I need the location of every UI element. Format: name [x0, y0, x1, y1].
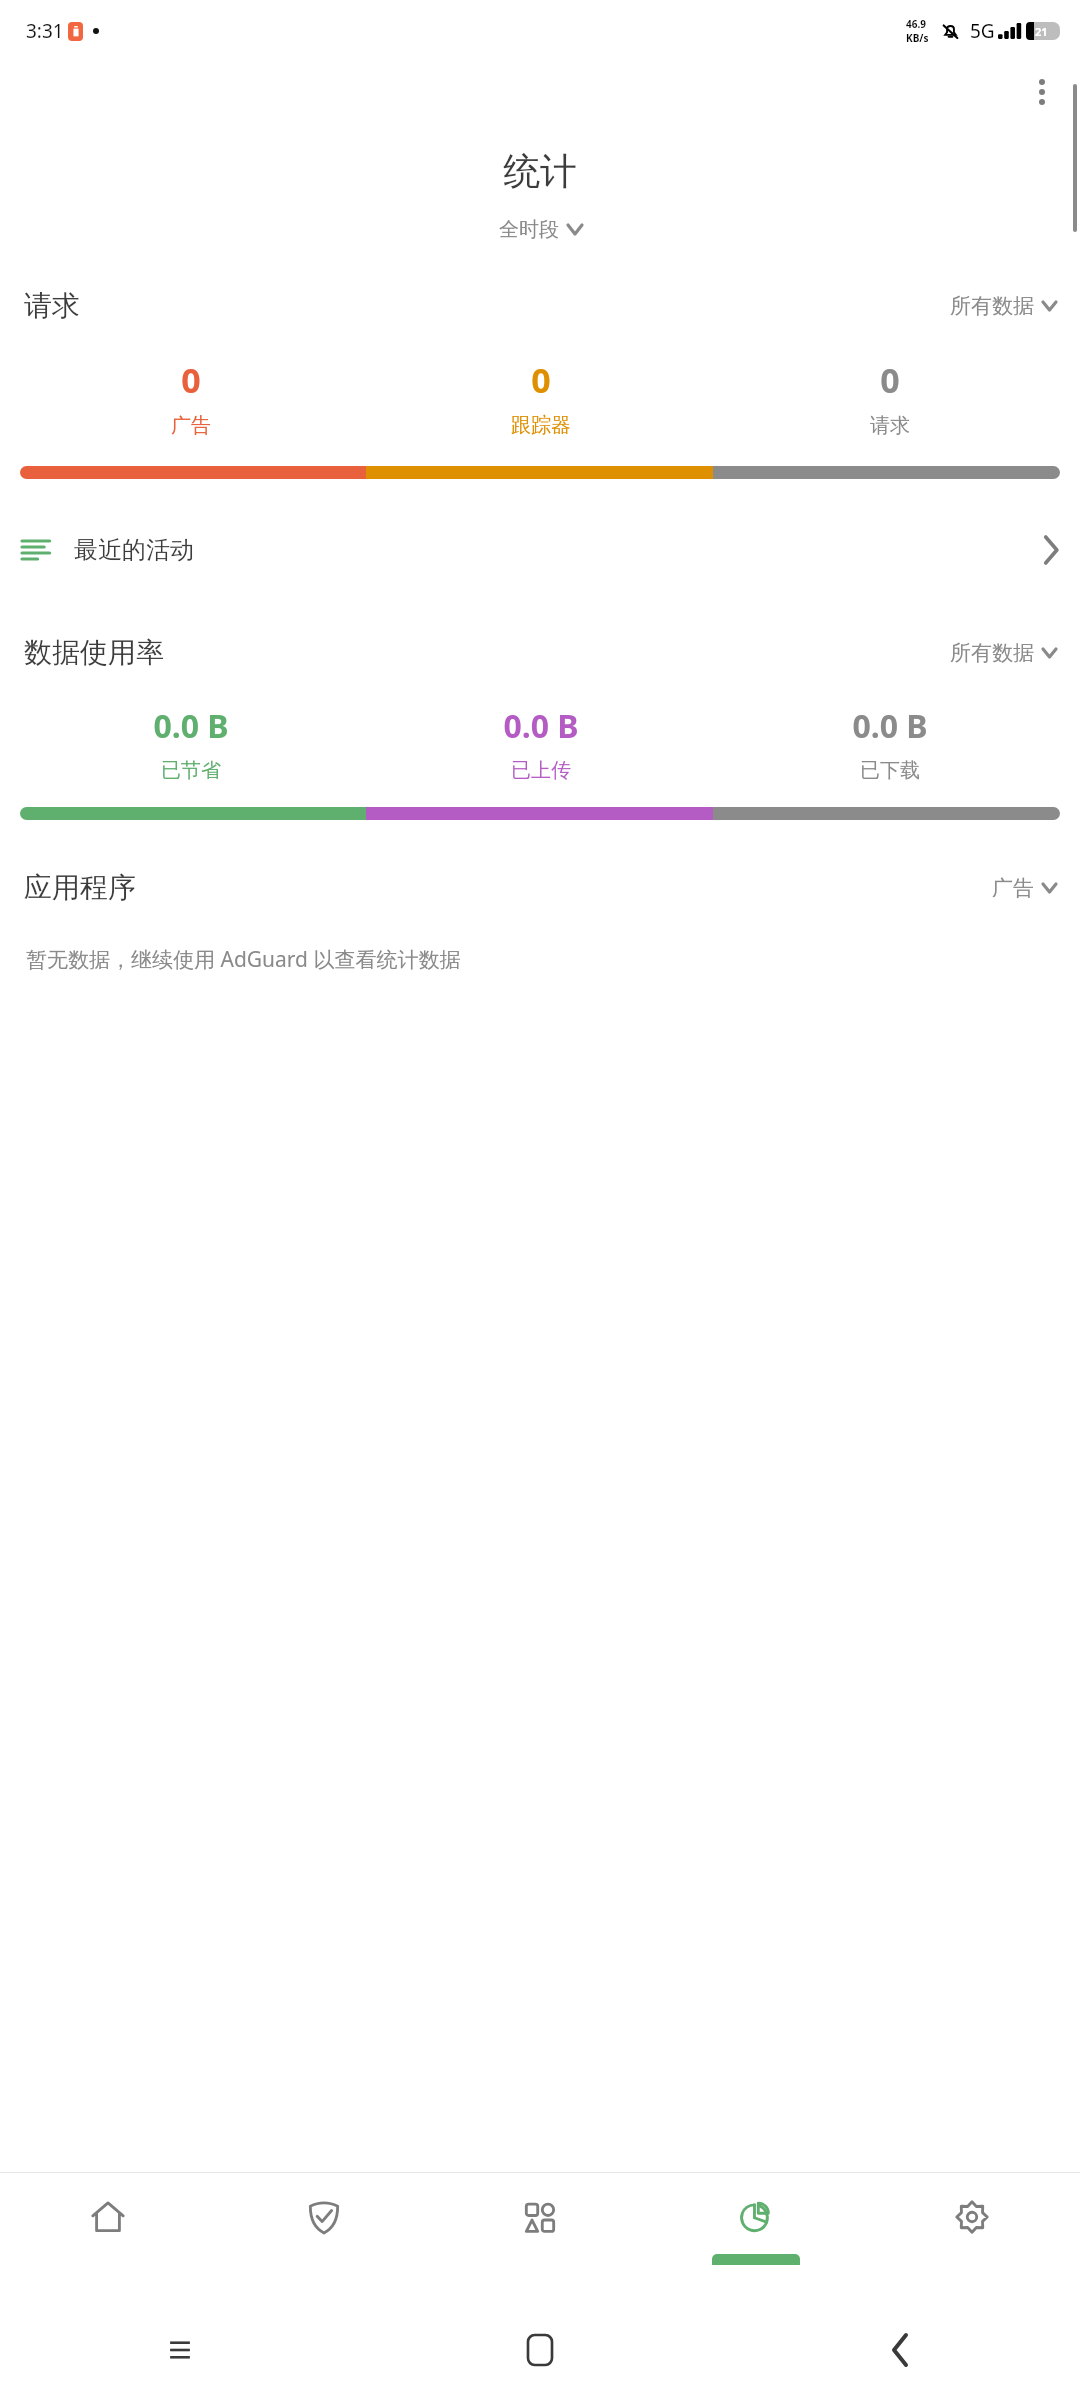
staticText: 最近的活动: [74, 535, 194, 565]
staticText: 3:31: [26, 18, 64, 44]
staticText: 广告: [171, 413, 211, 438]
button[interactable]: Back: [890, 2335, 910, 2365]
staticText: 已节省: [161, 758, 221, 783]
staticText: 0.0 B: [153, 704, 229, 748]
staticText: 5G: [970, 18, 995, 44]
button[interactable]: 0.0 B: [366, 704, 715, 783]
button[interactable]: Home: [528, 2335, 552, 2365]
staticText: 已下载: [860, 758, 920, 783]
button[interactable]: 0: [16, 357, 366, 438]
staticText: 0.0 B: [503, 704, 579, 748]
staticText: 所有数据: [950, 640, 1034, 666]
staticText: 0.0 B: [852, 704, 928, 748]
staticText: 已上传: [511, 758, 571, 783]
button[interactable]: 广告: [992, 875, 1056, 901]
button[interactable]: 所有数据: [950, 293, 1056, 319]
button[interactable]: More options: [1018, 68, 1066, 116]
button[interactable]: Protection: [216, 2172, 432, 2300]
staticText: 统计: [0, 148, 1080, 195]
staticText: 暂无数据，继续使用 AdGuard 以查看统计数据: [26, 945, 461, 974]
button[interactable]: Statistics: [648, 2172, 864, 2300]
button[interactable]: 全时段: [0, 217, 1080, 242]
staticText: 0: [531, 357, 551, 403]
button[interactable]: Settings: [864, 2172, 1080, 2300]
staticText: 数据使用率: [24, 635, 164, 670]
staticText: 46.9: [906, 17, 926, 31]
staticText: 21: [1035, 24, 1048, 39]
button[interactable]: 0: [366, 357, 715, 438]
button[interactable]: Recents: [167, 2337, 193, 2363]
staticText: 广告: [992, 875, 1034, 901]
button[interactable]: Apps: [432, 2172, 648, 2300]
button[interactable]: 0: [715, 357, 1064, 438]
button[interactable]: Home: [0, 2172, 216, 2300]
staticText: 应用程序: [24, 870, 136, 905]
staticText: 请求: [24, 288, 80, 323]
staticText: 请求: [870, 413, 910, 438]
staticText: 所有数据: [950, 293, 1034, 319]
staticText: KB/s: [906, 31, 929, 45]
button[interactable]: 0.0 B: [715, 704, 1064, 783]
button[interactable]: 最近的活动: [0, 521, 1080, 579]
staticText: 0: [181, 357, 201, 403]
button[interactable]: 所有数据: [950, 640, 1056, 666]
button[interactable]: 0.0 B: [16, 704, 366, 783]
staticText: 0: [880, 357, 900, 403]
staticText: 跟踪器: [511, 413, 571, 438]
staticText: 全时段: [499, 217, 559, 242]
